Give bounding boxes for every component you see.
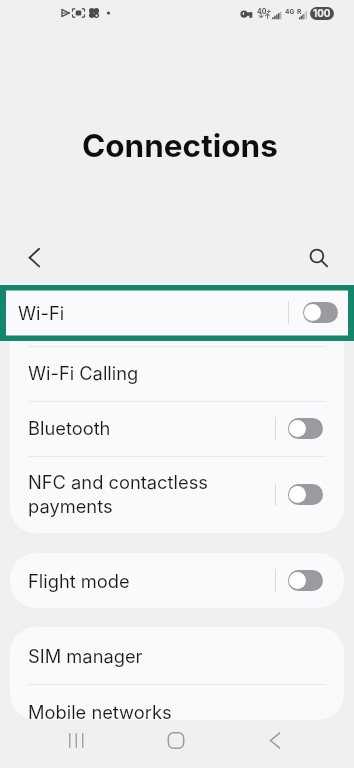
staticText: Wi-Fi (18, 302, 65, 324)
staticText: 4G (285, 8, 295, 16)
button[interactable]: Bluetooth switch (288, 418, 323, 439)
button[interactable] (10, 401, 344, 456)
staticText: Connections (82, 126, 278, 164)
staticText: 40+ (257, 7, 272, 15)
button[interactable]: Wi-Fi switch (303, 302, 338, 323)
staticText: NFC and contactless (28, 471, 208, 493)
button[interactable] (10, 456, 344, 533)
button[interactable]: Recent apps (51, 722, 101, 768)
staticText: ↓↑ (258, 12, 271, 20)
button[interactable]: Back (250, 722, 300, 768)
button[interactable] (10, 346, 344, 401)
button[interactable]: Home (151, 722, 201, 768)
button[interactable] (10, 684, 344, 720)
staticText: R (297, 8, 302, 16)
button[interactable] (10, 553, 344, 608)
button[interactable]: Search (296, 235, 338, 277)
button[interactable]: NFC and contactless payments switch (288, 484, 323, 505)
staticText: Flight mode (28, 570, 130, 592)
button[interactable] (10, 627, 344, 684)
button[interactable]: Flight mode switch (288, 570, 323, 591)
staticText: 100 (313, 8, 331, 20)
staticText: Wi-Fi Calling (28, 362, 139, 384)
staticText: payments (28, 495, 113, 517)
staticText: Mobile networks (28, 701, 172, 723)
button[interactable]: Navigate up (13, 235, 55, 277)
staticText: SIM manager (28, 645, 143, 667)
button[interactable]: Wi-Fi (6, 289, 348, 336)
staticText: Bluetooth (28, 417, 111, 439)
